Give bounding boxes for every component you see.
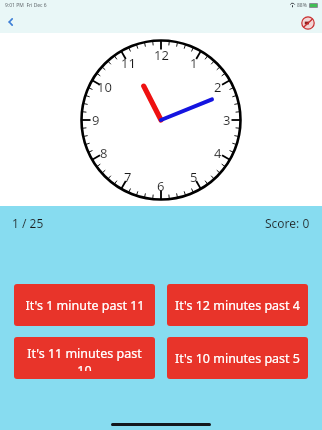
staticText: It's 10 minutes past 5 bbox=[175, 350, 300, 367]
staticText: 88% bbox=[297, 2, 307, 9]
staticText: 5 bbox=[190, 168, 198, 186]
staticText: 3 bbox=[223, 111, 231, 129]
staticText: 4 bbox=[214, 144, 222, 162]
button[interactable]: Back bbox=[0, 11, 22, 33]
staticText: 12 bbox=[154, 46, 169, 64]
staticText: It's 1 minute past 11 bbox=[25, 297, 145, 314]
button[interactable]: Mute sound bbox=[300, 15, 315, 30]
button[interactable]: It's 1 minute past 11 bbox=[14, 284, 155, 326]
staticText: It's 12 minutes past 4 bbox=[175, 297, 300, 314]
staticText: 8 bbox=[100, 144, 108, 162]
staticText: 6 bbox=[157, 177, 165, 195]
staticText: 7 bbox=[124, 168, 132, 186]
button[interactable]: It's 12 minutes past 4 bbox=[167, 284, 308, 326]
staticText: 1 / 25 bbox=[12, 215, 44, 231]
staticText: 2 bbox=[214, 78, 222, 96]
button[interactable]: It's 11 minutes past 10 bbox=[14, 337, 155, 379]
staticText: 9 bbox=[92, 111, 100, 129]
staticText: 10 bbox=[97, 78, 112, 96]
staticText: 9:01 PM Fri Dec 6 bbox=[5, 2, 47, 9]
staticText: 1 bbox=[190, 54, 198, 72]
staticText: It's 11 minutes past 10 bbox=[20, 345, 149, 371]
staticText: Score: 0 bbox=[265, 215, 310, 231]
button[interactable]: It's 10 minutes past 5 bbox=[167, 337, 308, 379]
staticText: 11 bbox=[121, 54, 136, 72]
